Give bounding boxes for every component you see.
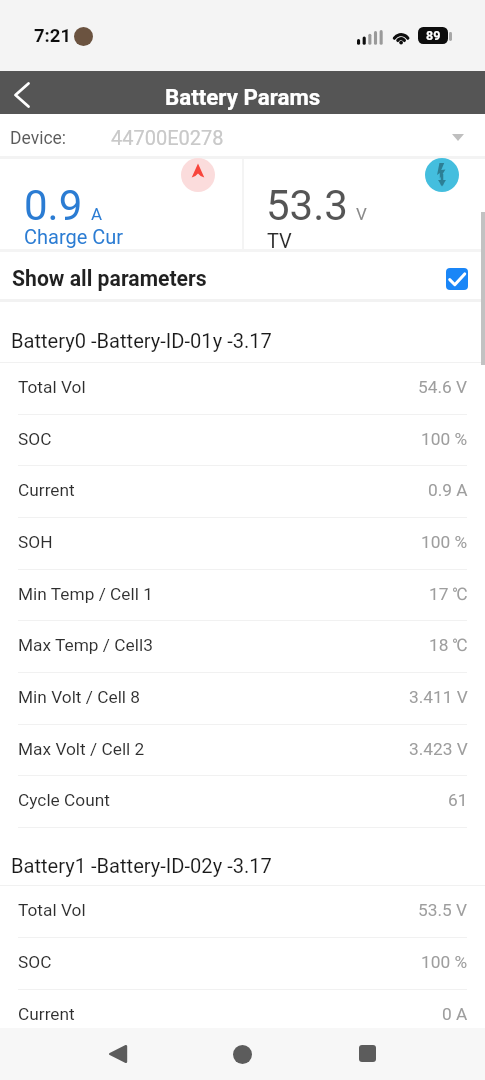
- button[interactable]: SOC: [0, 938, 485, 990]
- staticText: A: [91, 204, 103, 224]
- button[interactable]: Home: [218, 1033, 266, 1075]
- staticText: 0.9 A: [428, 480, 468, 500]
- staticText: 53.5 V: [418, 900, 468, 920]
- staticText: 54.6 V: [418, 377, 468, 397]
- staticText: Show all parameters: [12, 266, 207, 291]
- button[interactable]: Current: [0, 990, 485, 1042]
- staticText: 0.9: [24, 181, 83, 230]
- button[interactable]: SOH: [0, 518, 485, 570]
- staticText: Min Volt / Cell 8: [18, 687, 141, 707]
- staticText: 18 ℃: [429, 635, 468, 655]
- staticText: Current: [18, 1004, 75, 1024]
- staticText: 17 ℃: [429, 584, 468, 604]
- button[interactable]: Min Temp / Cell 1: [0, 570, 485, 622]
- staticText: Cycle Count: [18, 790, 110, 810]
- staticText: TV: [267, 229, 292, 252]
- button[interactable]: Total Vol: [0, 886, 485, 938]
- button[interactable]: SOC: [0, 415, 485, 467]
- staticText: 7:21: [34, 25, 72, 47]
- button[interactable]: Total Vol: [0, 363, 485, 415]
- button[interactable]: Current: [0, 466, 485, 518]
- button[interactable]: Max Temp / Cell3: [0, 621, 485, 673]
- button[interactable]: Cycle Count: [0, 776, 485, 828]
- staticText: V: [356, 204, 367, 224]
- staticText: SOC: [18, 429, 52, 449]
- staticText: 44700E0278: [111, 126, 224, 149]
- staticText: Max Volt / Cell 2: [18, 739, 145, 759]
- staticText: Battery1 -Battery-ID-02y -3.17: [11, 854, 272, 878]
- staticText: Total Vol: [18, 377, 86, 397]
- button[interactable]: Max Volt / Cell 2: [0, 725, 485, 777]
- staticText: SOH: [18, 532, 53, 552]
- staticText: 61: [448, 790, 468, 810]
- staticText: 100 %: [421, 532, 468, 552]
- button[interactable]: Min Volt / Cell 8: [0, 673, 485, 725]
- staticText: 53.3: [266, 181, 348, 230]
- staticText: Charge Cur: [24, 225, 124, 248]
- staticText: SOC: [18, 952, 52, 972]
- button[interactable]: Back: [0, 71, 42, 114]
- staticText: Battery0 -Battery-ID-01y -3.17: [11, 329, 272, 353]
- staticText: Max Temp / Cell3: [18, 635, 153, 655]
- staticText: Total Vol: [18, 900, 86, 920]
- staticText: 100 %: [421, 952, 468, 972]
- staticText: Battery Params: [165, 84, 321, 110]
- staticText: 100 %: [421, 429, 468, 449]
- staticText: 0 A: [442, 1004, 468, 1024]
- staticText: 89: [426, 28, 441, 43]
- staticText: Device:: [10, 128, 67, 149]
- staticText: 3.423 V: [409, 739, 468, 759]
- button[interactable]: Back: [94, 1033, 142, 1075]
- button[interactable]: Recents: [344, 1033, 392, 1075]
- button[interactable]: Show all parameters: [0, 252, 485, 302]
- button[interactable]: Device:: [0, 114, 485, 159]
- staticText: Current: [18, 480, 75, 500]
- staticText: Min Temp / Cell 1: [18, 584, 153, 604]
- staticText: 3.411 V: [409, 687, 468, 707]
